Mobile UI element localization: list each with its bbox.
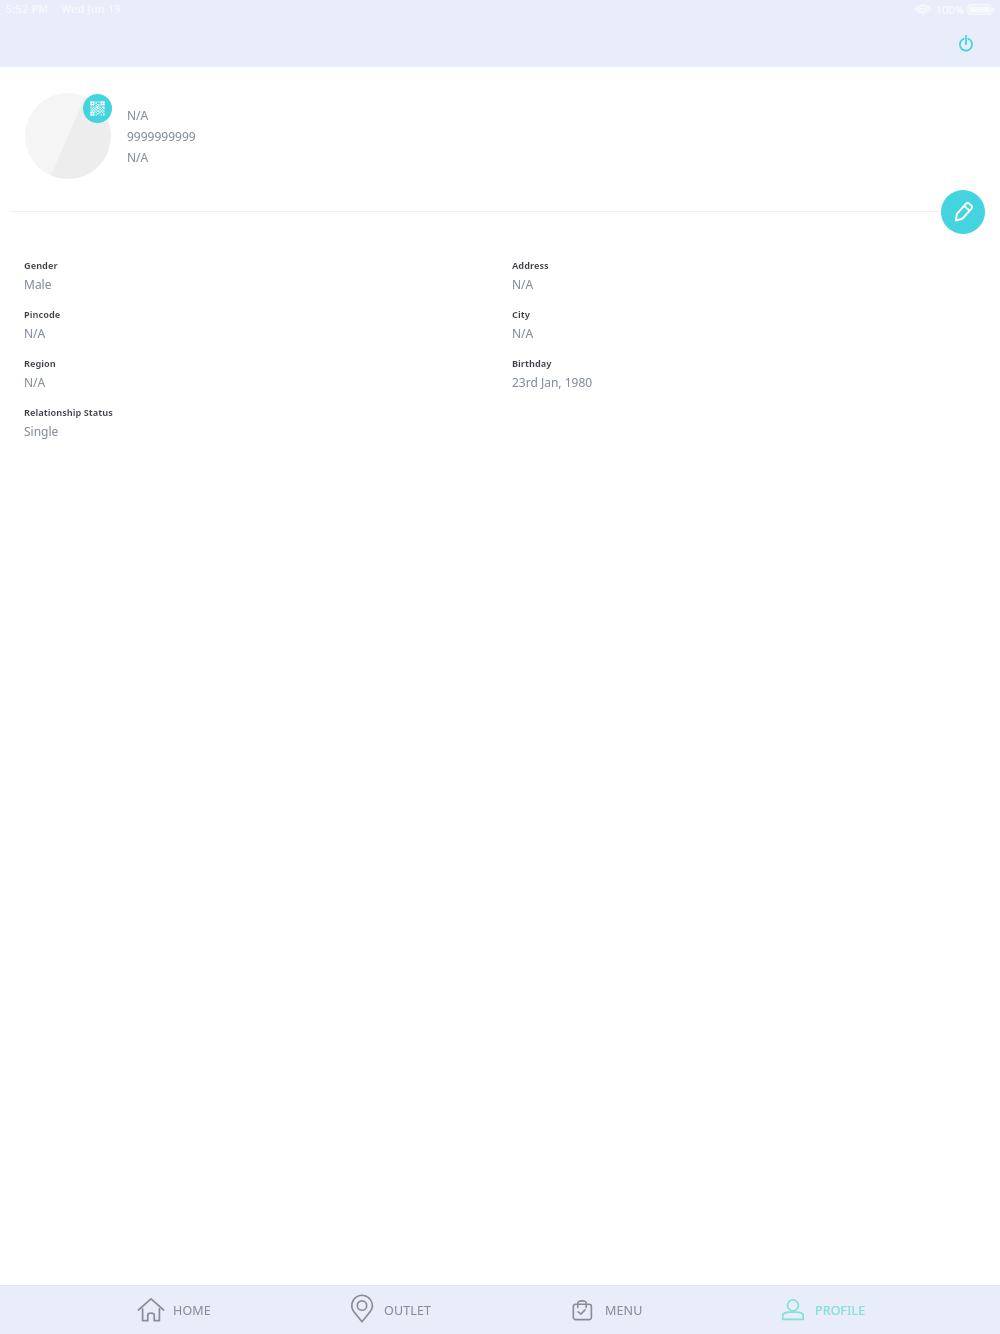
staticText: Address (512, 259, 549, 272)
button[interactable]: Profile picture (25, 93, 111, 179)
staticText: 100% (936, 2, 965, 17)
staticText: N/A (512, 325, 534, 341)
button[interactable]: Log out (954, 31, 978, 55)
staticText: Male (24, 276, 52, 292)
staticText: City (512, 308, 530, 321)
staticText: N/A (127, 107, 149, 123)
staticText: Gender (24, 259, 58, 272)
staticText: Pincode (24, 308, 61, 321)
staticText: Single (24, 423, 59, 439)
staticText: N/A (512, 276, 534, 292)
staticText: Relationship Status (24, 406, 113, 419)
staticText: Region (24, 357, 56, 370)
staticText: Birthday (512, 357, 552, 370)
staticText: N/A (24, 374, 46, 390)
button[interactable]: Show QR code (83, 94, 112, 123)
staticText: PROFILE (815, 1302, 866, 1319)
staticText: HOME (173, 1302, 211, 1319)
button[interactable]: OUTLET (282, 1286, 498, 1334)
button[interactable]: PROFILE (714, 1286, 930, 1334)
staticText: N/A (24, 325, 46, 341)
button[interactable]: HOME (65, 1286, 282, 1334)
staticText: N/A (127, 149, 149, 165)
staticText: 9999999999 (127, 128, 196, 144)
button[interactable]: MENU (498, 1286, 714, 1334)
staticText: 5:52 PM Wed Jun 19 (6, 2, 122, 16)
button[interactable]: Edit profile (941, 190, 985, 234)
staticText: 23rd Jan, 1980 (512, 374, 593, 390)
staticText: OUTLET (384, 1302, 432, 1319)
staticText: MENU (605, 1302, 643, 1319)
